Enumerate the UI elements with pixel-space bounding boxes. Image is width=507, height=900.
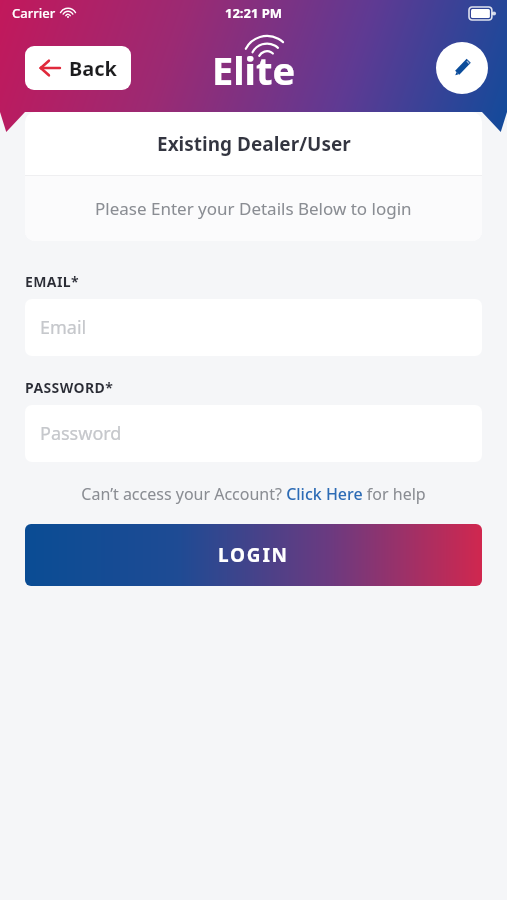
button[interactable]: Password (25, 405, 482, 462)
staticText: Carrier (12, 4, 56, 22)
button[interactable]: Edit (436, 42, 488, 94)
button[interactable]: Can’t access your Account? Click Here fo… (81, 483, 426, 505)
staticText: PASSWORD* (25, 378, 114, 397)
staticText: Password (40, 421, 122, 446)
staticText: Existing Dealer/User (157, 131, 351, 157)
staticText: Email (40, 315, 87, 340)
button[interactable]: Email (25, 299, 482, 356)
staticText: Back (69, 55, 117, 82)
button[interactable]: Back (25, 46, 131, 90)
staticText: Elite (212, 44, 296, 96)
staticText: EMAIL* (25, 272, 79, 291)
staticText: Please Enter your Details Below to login (95, 197, 412, 220)
staticText: 12:21 PM (225, 4, 283, 22)
button[interactable]: LOGIN (25, 524, 482, 586)
staticText: LOGIN (218, 542, 289, 568)
